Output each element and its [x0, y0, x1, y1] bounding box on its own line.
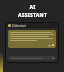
staticText: AI [29, 4, 36, 11]
staticText: ASSISTANT [18, 12, 47, 19]
button[interactable]: Send [8, 56, 56, 60]
other: Send [52, 57, 54, 59]
staticText: AI Assistant [12, 24, 27, 27]
button[interactable]: Copy [8, 30, 56, 48]
